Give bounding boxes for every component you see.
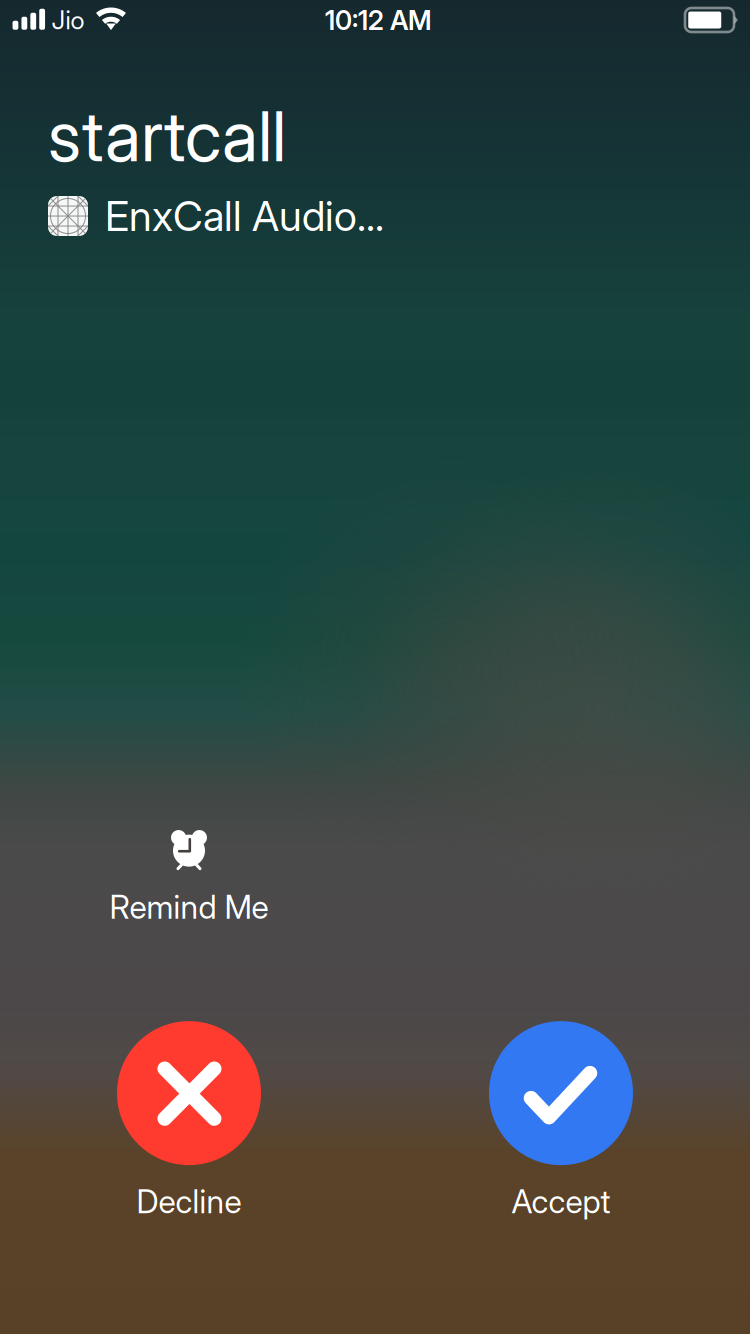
staticText: Accept [511, 1182, 610, 1221]
button[interactable]: Remind Me [74, 826, 304, 926]
staticText: startcall [48, 94, 286, 178]
staticText: Decline [136, 1182, 241, 1221]
staticText: Jio [51, 5, 84, 35]
staticText: Remind Me [109, 888, 268, 926]
button[interactable]: Decline [74, 1021, 304, 1221]
staticText: 10:12 AM [325, 4, 432, 36]
button[interactable]: Accept [446, 1021, 676, 1221]
staticText: EnxCall Audio... [105, 191, 384, 241]
